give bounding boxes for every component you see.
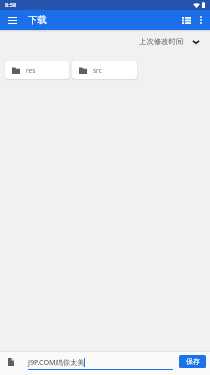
button[interactable]: J9P.COM鸡你太美 (28, 357, 173, 370)
staticText: res (26, 66, 36, 75)
button[interactable]: 保存 (179, 355, 206, 368)
staticText: J9P.COM鸡你太美 (28, 357, 85, 367)
button[interactable]: src (72, 61, 137, 79)
button[interactable]: Switch view (177, 11, 195, 29)
button[interactable]: More options (192, 11, 210, 29)
button[interactable]: Navigation menu (4, 12, 20, 28)
staticText: 8:58 (5, 1, 17, 9)
staticText: src (93, 66, 102, 75)
staticText: 上次修改时间 (139, 37, 184, 46)
staticText: 下载 (28, 14, 47, 26)
button[interactable]: 上次修改时间 (131, 33, 210, 49)
staticText: 保存 (186, 357, 200, 366)
button[interactable]: res (5, 61, 69, 79)
